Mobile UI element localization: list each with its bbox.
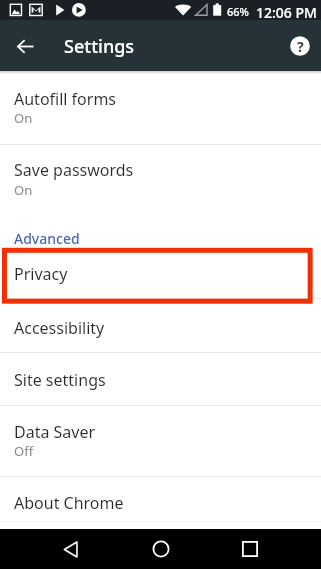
button[interactable]: Site settings [0,353,321,404]
staticText: Autofill forms [14,88,117,110]
staticText: ? [297,37,304,56]
staticText: Privacy [14,263,68,285]
button[interactable]: Help and feedback [284,30,316,62]
staticText: Site settings [14,369,106,391]
button[interactable]: About Chrome [0,477,321,521]
staticText: Data Saver [14,421,96,443]
button[interactable]: Navigate up [8,29,42,63]
button[interactable]: Privacy [0,257,321,298]
button[interactable]: Autofill forms [0,71,321,144]
staticText: Save passwords [14,159,134,181]
staticText: 12:06 PM [256,3,317,22]
staticText: About Chrome [14,492,124,514]
staticText: 66% [227,4,249,19]
staticText: On [14,109,33,127]
button[interactable]: Home [145,533,177,565]
button[interactable]: Back [55,533,87,565]
staticText: Advanced [14,229,80,248]
staticText: Settings [64,34,135,59]
button[interactable]: Data Saver [0,406,321,476]
staticText: Accessibility [14,317,105,339]
staticText: On [14,181,33,199]
staticText: Off [14,442,34,460]
button[interactable]: Recent apps [234,533,266,565]
button[interactable]: Accessibility [0,299,321,352]
button[interactable]: Save passwords [0,145,321,229]
